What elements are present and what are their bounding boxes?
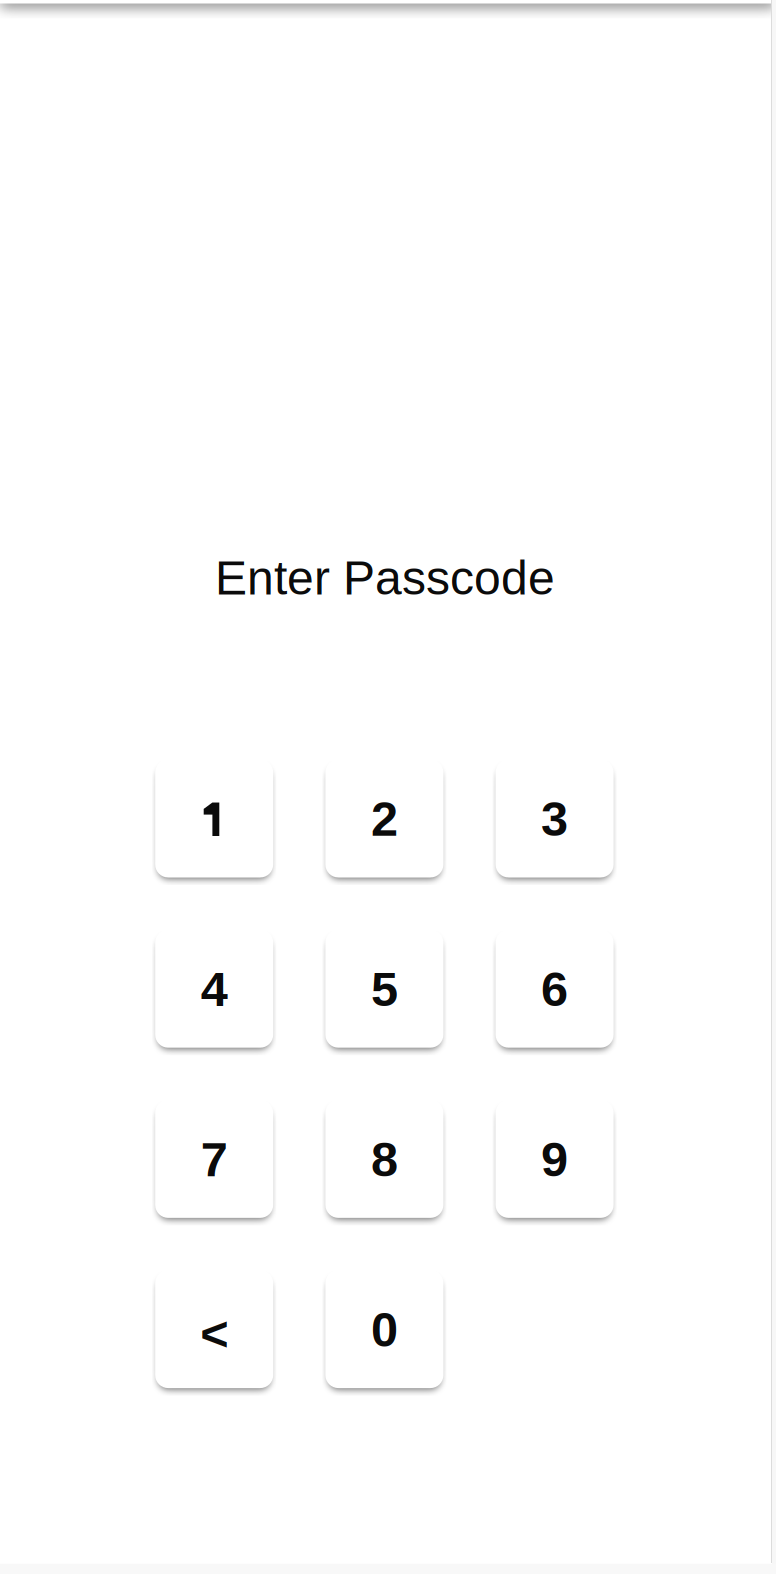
staticText: <	[200, 1306, 228, 1361]
button[interactable]: Zero	[325, 1270, 443, 1388]
staticText: 7	[201, 1132, 228, 1187]
staticText: Enter Passcode	[215, 551, 555, 605]
button[interactable]: Eight	[325, 1100, 443, 1218]
button[interactable]: Five	[325, 930, 443, 1048]
staticText: 8	[371, 1132, 398, 1187]
staticText: 2	[371, 792, 398, 846]
staticText: 3	[541, 792, 568, 846]
button[interactable]: Three	[496, 759, 614, 877]
button[interactable]: Six	[496, 930, 614, 1048]
staticText: 5	[371, 962, 398, 1016]
staticText: 0	[371, 1302, 398, 1357]
button[interactable]: One	[155, 759, 273, 877]
button[interactable]: Four	[155, 930, 273, 1048]
staticText: 6	[541, 962, 568, 1016]
button[interactable]: Nine	[496, 1100, 614, 1218]
button[interactable]: Seven	[155, 1100, 273, 1218]
button[interactable]: Two	[325, 759, 443, 877]
button[interactable]: Delete	[155, 1270, 273, 1388]
staticText: 9	[541, 1132, 568, 1187]
staticText: 4	[201, 962, 228, 1016]
